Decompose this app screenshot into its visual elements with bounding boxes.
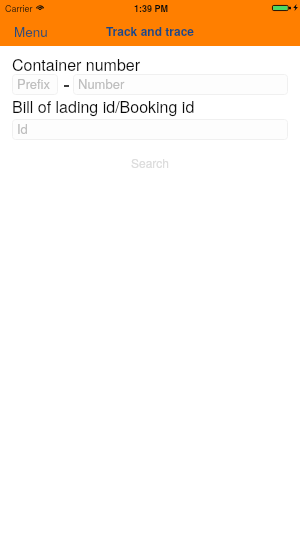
- staticText: Id: [17, 119, 28, 138]
- staticText: Prefix: [17, 74, 51, 93]
- button[interactable]: Number: [73, 74, 288, 95]
- staticText: Carrier: [5, 2, 33, 15]
- button[interactable]: Prefix: [12, 74, 58, 95]
- button[interactable]: Search: [0, 150, 300, 175]
- other: Charging: [293, 4, 298, 11]
- other: Wi-Fi: [36, 3, 44, 10]
- staticText: Search: [131, 154, 169, 171]
- other: Battery: [272, 5, 291, 11]
- staticText: 1:39 PM: [134, 2, 169, 15]
- button[interactable]: Id: [12, 119, 288, 140]
- button[interactable]: Menu: [0, 17, 62, 43]
- staticText: Container number: [12, 53, 141, 76]
- staticText: Number: [78, 74, 125, 93]
- staticText: Bill of lading id/Booking id: [12, 95, 195, 118]
- staticText: Menu: [14, 22, 48, 38]
- staticText: Track and trace: [106, 22, 195, 39]
